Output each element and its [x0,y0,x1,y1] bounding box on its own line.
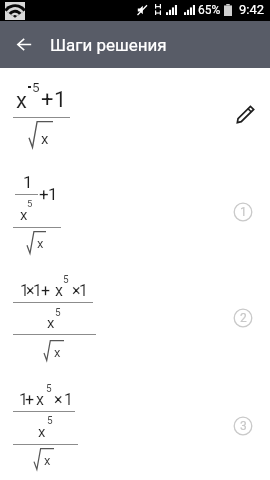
staticText: x [55,281,63,300]
staticText: 1 [48,184,58,204]
staticText: x [38,423,46,441]
button[interactable]: 3 [233,416,253,436]
staticText: 5 [46,383,52,395]
staticText: x [20,206,28,224]
staticText: 9:42 [239,2,265,17]
staticText: x [16,88,27,114]
staticText: 5 [63,274,69,286]
staticText: + [39,184,49,204]
staticText: 65% [198,3,221,17]
staticText: 5 [55,307,61,319]
staticText: 2 [240,311,247,325]
staticText: + [41,87,54,113]
staticText: × [26,281,35,300]
staticText: 1 [240,205,247,219]
staticText: 5 [32,79,40,95]
staticText: 5 [27,198,33,209]
staticText: + [41,281,51,300]
staticText: x [37,236,44,251]
staticText: 1 [33,281,42,300]
staticText: 1 [54,87,67,113]
staticText: + [25,390,35,409]
button[interactable]: 2 [233,308,253,328]
staticText: 1 [64,390,73,409]
staticText: 1 [19,390,28,409]
staticText: 1 [20,281,29,300]
staticText: × [54,390,63,409]
button[interactable]: 1 [233,202,253,222]
staticText: x [44,453,51,468]
staticText: Шаги решения [50,35,167,55]
staticText: 3 [240,419,247,433]
button[interactable]: Back [7,21,42,68]
staticText: x [54,345,61,360]
staticText: x [36,390,44,409]
button[interactable]: Edit [231,100,259,128]
staticText: 5 [47,415,53,427]
staticText: 1 [79,281,88,300]
staticText: x [47,314,55,332]
staticText: × [72,281,81,300]
staticText: x [41,130,49,148]
staticText: 1 [23,172,33,192]
